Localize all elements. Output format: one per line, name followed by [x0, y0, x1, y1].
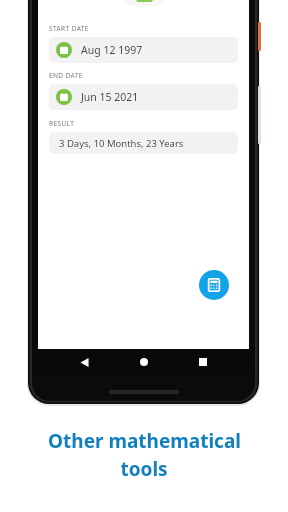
button[interactable]: Back [71, 349, 97, 375]
button[interactable]: Aug 12 1997 [49, 37, 238, 63]
staticText: tools [120, 456, 168, 482]
button[interactable]: 3 Days, 10 Months, 23 Years [49, 132, 238, 154]
button[interactable]: Calculator [199, 270, 229, 300]
button[interactable]: Recents [190, 349, 216, 375]
button[interactable]: Home [131, 349, 157, 375]
staticText: Aug 12 1997 [81, 43, 143, 57]
staticText: Jun 15 2021 [81, 90, 139, 104]
staticText: Other mathematical [48, 428, 241, 454]
button[interactable]: Jun 15 2021 [49, 84, 238, 110]
staticText: START DATE [49, 24, 89, 33]
staticText: RESULT [49, 119, 75, 128]
staticText: 3 Days, 10 Months, 23 Years [59, 137, 184, 150]
staticText: END DATE [49, 71, 83, 80]
button[interactable]: Calendar [122, 0, 166, 6]
